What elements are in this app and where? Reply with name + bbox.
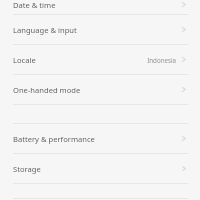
staticText: Battery & performance [13, 134, 95, 144]
button[interactable]: Battery & performance [0, 124, 200, 153]
button[interactable]: Date & time [0, 0, 200, 12]
button[interactable]: Language & input [0, 15, 200, 44]
staticText: Locale [13, 55, 36, 65]
staticText: Date & time [13, 0, 56, 10]
button[interactable]: Locale [0, 45, 200, 74]
staticText: Indonesia [147, 56, 176, 64]
staticText: One-handed mode [13, 85, 81, 95]
button[interactable]: Storage [0, 154, 200, 183]
button[interactable]: One-handed mode [0, 75, 200, 104]
staticText: Storage [13, 164, 41, 174]
staticText: Language & input [13, 25, 77, 35]
